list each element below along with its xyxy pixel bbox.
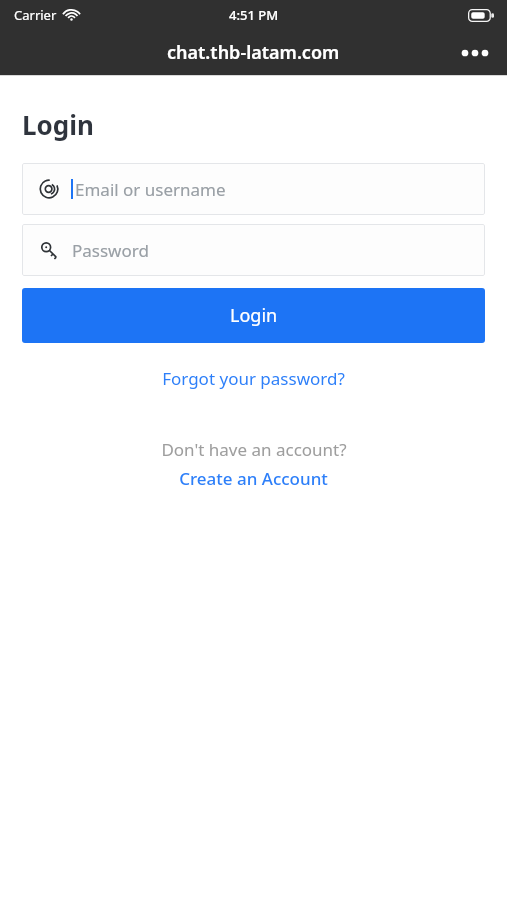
staticText: Don't have an account? — [161, 438, 347, 461]
button[interactable]: Password — [22, 224, 485, 276]
staticText: Create an Account — [179, 467, 328, 490]
staticText: 4:51 PM — [229, 6, 279, 24]
staticText: chat.thb-latam.com — [167, 40, 340, 65]
staticText: Carrier — [14, 6, 57, 24]
staticText: Forgot your password? — [162, 367, 345, 390]
staticText: Password — [72, 239, 149, 262]
button[interactable]: Create an Account — [175, 466, 332, 491]
button[interactable]: Email or username — [22, 163, 485, 215]
button[interactable]: Forgot your password? — [22, 362, 485, 395]
button[interactable]: More options — [451, 30, 499, 75]
staticText: Email or username — [75, 178, 226, 201]
button[interactable]: Login — [22, 288, 485, 343]
staticText: Login — [230, 303, 278, 328]
staticText: Login — [22, 107, 94, 142]
